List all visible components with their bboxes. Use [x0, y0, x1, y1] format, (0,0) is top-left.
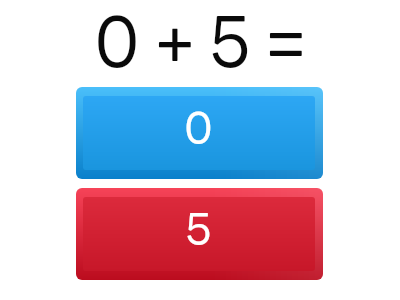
button[interactable]: 0 — [76, 87, 323, 179]
staticText: 0 + 5 = — [94, 5, 303, 76]
button[interactable]: 5 — [76, 188, 323, 280]
staticText: 5 — [185, 206, 213, 251]
staticText: 0 — [184, 105, 214, 150]
